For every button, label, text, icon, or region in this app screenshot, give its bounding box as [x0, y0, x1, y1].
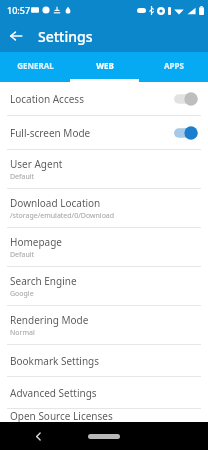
staticText: Google — [10, 289, 34, 299]
staticText: Advanced Settings — [10, 386, 97, 400]
staticText: 10:57 — [7, 4, 31, 16]
staticText: Rendering Mode — [10, 313, 89, 327]
staticText: Normal — [10, 328, 35, 338]
button[interactable]: Back — [28, 426, 48, 446]
button[interactable]: Full-screen Mode — [0, 116, 208, 149]
staticText: Open Source Licenses — [10, 409, 113, 422]
button[interactable]: GENERAL — [0, 52, 70, 79]
staticText: Homepage — [10, 235, 62, 249]
button[interactable]: Bookmark Settings — [0, 345, 208, 376]
button[interactable]: Search Engine — [0, 267, 208, 305]
button[interactable]: User Agent — [0, 150, 208, 188]
button[interactable]: Home — [88, 434, 120, 439]
staticText: User Agent — [10, 157, 63, 171]
staticText: Settings — [38, 27, 93, 46]
staticText: /storage/emulated/0/Download — [10, 211, 115, 221]
button[interactable]: Download Location — [0, 189, 208, 227]
staticText: Full-screen Mode — [10, 126, 174, 140]
button[interactable]: Open Source Licenses — [0, 409, 208, 422]
button[interactable]: WEB — [70, 52, 139, 79]
staticText: APPS — [164, 60, 184, 71]
staticText: Location Access — [10, 92, 174, 106]
staticText: Bookmark Settings — [10, 354, 100, 368]
staticText: Default — [10, 250, 35, 260]
button[interactable]: Rendering Mode — [0, 306, 208, 344]
button[interactable]: Location Access — [0, 82, 208, 115]
staticText: Download Location — [10, 196, 101, 210]
button[interactable]: Advanced Settings — [0, 377, 208, 408]
button[interactable]: Back — [0, 20, 32, 52]
button[interactable]: Homepage — [0, 228, 208, 266]
staticText: WEB — [96, 60, 114, 71]
staticText: Default — [10, 172, 35, 182]
staticText: Search Engine — [10, 274, 77, 288]
staticText: GENERAL — [17, 60, 54, 71]
button[interactable]: APPS — [139, 52, 208, 79]
